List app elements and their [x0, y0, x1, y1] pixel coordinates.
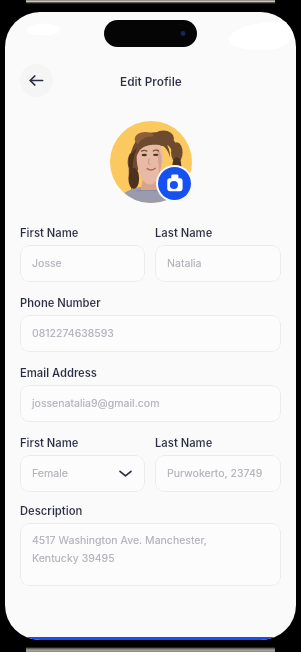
staticText: Phone Number	[20, 296, 101, 310]
button[interactable]: Female	[20, 455, 145, 492]
staticText: First Name	[20, 436, 79, 450]
staticText: Natalia	[167, 257, 202, 270]
staticText: Josse	[32, 257, 62, 270]
staticText: Description	[20, 504, 83, 518]
button[interactable]: 0812274638593	[20, 315, 281, 352]
button[interactable]: jossenatalia9@gmail.com	[20, 385, 281, 422]
button[interactable]: 4517 Washington Ave. Manchester, Kentuck…	[20, 523, 281, 586]
button[interactable]: Change profile photo	[158, 167, 191, 200]
staticText: First Name	[20, 226, 79, 240]
staticText: Last Name	[155, 436, 213, 450]
button[interactable]: Purwokerto, 23749	[155, 455, 281, 492]
staticText: Female	[32, 467, 68, 480]
staticText: Edit Profile	[120, 75, 182, 89]
staticText: 0812274638593	[32, 327, 114, 340]
button[interactable]: Back	[20, 64, 53, 97]
button[interactable]: Josse	[20, 245, 145, 282]
staticText: Purwokerto, 23749	[167, 467, 263, 480]
staticText: jossenatalia9@gmail.com	[32, 397, 160, 410]
staticText: Email Address	[20, 366, 97, 380]
staticText: Last Name	[155, 226, 213, 240]
staticText: 4517 Washington Ave. Manchester, Kentuck…	[32, 534, 207, 564]
button[interactable]: Natalia	[155, 245, 281, 282]
